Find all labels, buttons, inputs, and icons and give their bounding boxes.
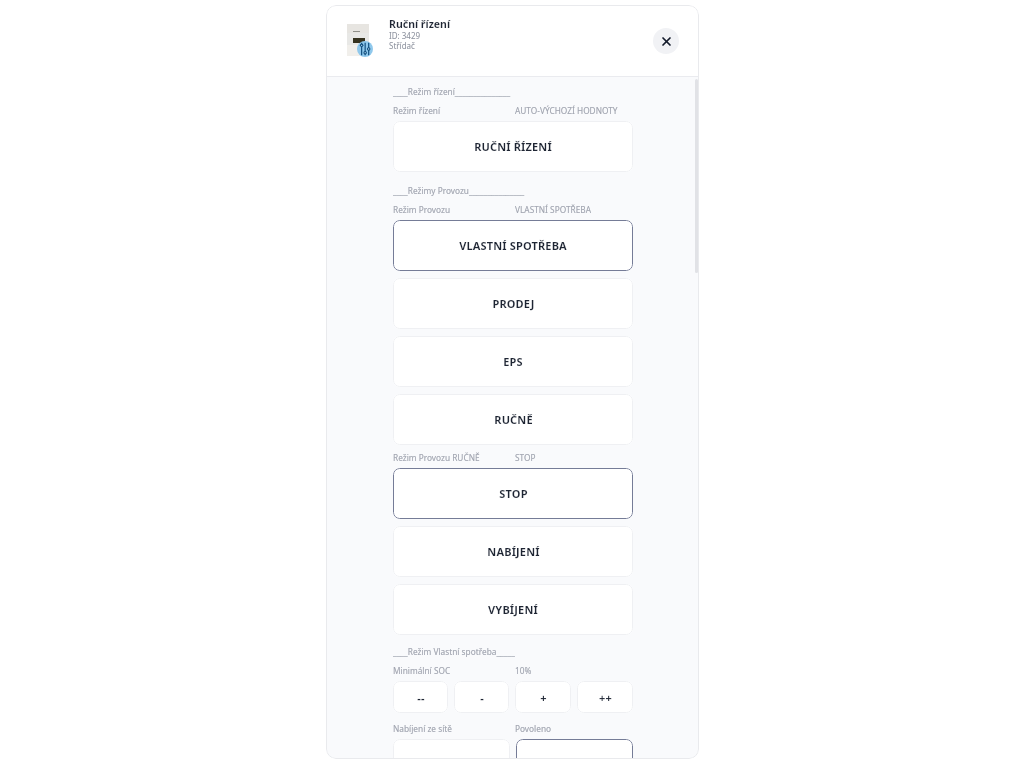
staticText: Režim řízení [393,105,515,116]
button[interactable]: + [515,681,571,713]
button[interactable]: Close [653,28,679,54]
staticText: Povoleno [515,723,552,734]
button[interactable]: VYBÍJENÍ [393,584,633,635]
staticText: Režim Provozu RUČNĚ [393,452,515,463]
staticText: PRODEJ [492,296,535,311]
staticText: Nabíjení ze sítě [393,723,515,734]
button[interactable]: ++ [577,681,633,713]
button[interactable]: VLASTNÍ SPOTŘEBA [393,220,633,271]
staticText: VLASTNÍ SPOTŘEBA [515,204,591,215]
staticText: Minimální SOC [393,665,515,676]
staticText: Ruční řízení [389,17,451,30]
staticText: ++ [599,690,612,705]
staticText: ____Režimy Provozu_______________ [393,185,525,196]
staticText: Režim Provozu [393,204,515,215]
staticText: Střídač [389,40,415,50]
staticText: POVOLENO [543,757,606,759]
button[interactable]: EPS [393,336,633,387]
button[interactable]: -- [393,681,448,713]
button[interactable]: - [454,681,509,713]
staticText: ____Režim řízení_______________ [393,86,511,97]
staticText: 10% [515,665,532,676]
staticText: RUČNĚ [494,412,533,427]
staticText: ZAKÁZÁNO [421,757,483,759]
staticText: - [480,690,484,705]
staticText: STOP [499,486,528,501]
staticText: RUČNÍ ŘÍZENÍ [474,139,552,154]
staticText: + [540,690,547,705]
button[interactable]: RUČNÍ ŘÍZENÍ [393,121,633,172]
staticText: NABÍJENÍ [487,544,540,559]
button[interactable]: ZAKÁZÁNO [393,739,510,759]
button[interactable]: RUČNĚ [393,394,633,445]
button[interactable]: POVOLENO [516,739,633,759]
staticText: VYBÍJENÍ [488,602,538,617]
staticText: ID: 3429 [389,30,421,40]
staticText: ____Režim Vlastní spotřeba_____ [393,646,515,657]
staticText: AUTO-VÝCHOZÍ HODNOTY [515,105,618,116]
staticText: STOP [515,452,536,463]
staticText: -- [417,690,425,705]
staticText: EPS [503,354,523,369]
staticText: VLASTNÍ SPOTŘEBA [459,238,567,253]
button[interactable]: STOP [393,468,633,519]
button[interactable]: PRODEJ [393,278,633,329]
button[interactable]: NABÍJENÍ [393,526,633,577]
